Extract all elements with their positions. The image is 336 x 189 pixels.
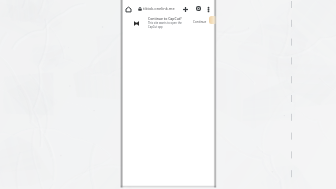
button[interactable]: Home [123, 4, 133, 14]
button[interactable]: More options [203, 4, 213, 14]
staticText: Continue [193, 20, 207, 24]
button[interactable]: Continue [190, 18, 210, 26]
other: Secure connection [137, 6, 142, 11]
button[interactable]: New tab [180, 4, 190, 14]
button[interactable]: Tabs [193, 3, 203, 13]
staticText: This site wants to open the CapCut app [148, 21, 182, 29]
staticText: Continue to CapCut? [148, 16, 182, 21]
staticText: tiktok.onelink.me [143, 6, 175, 11]
